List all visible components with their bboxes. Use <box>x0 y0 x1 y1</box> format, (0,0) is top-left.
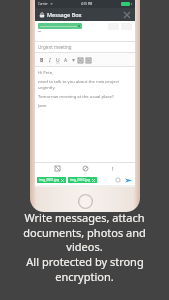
button[interactable]: img_0002.jpg <box>68 177 97 183</box>
staticText: Hi Pete, <box>38 70 54 76</box>
staticText: Jane <box>38 103 47 109</box>
staticText: img_0002.jpg <box>70 178 91 182</box>
staticText: B <box>40 57 44 64</box>
staticText: Carrier <box>38 2 48 6</box>
staticText: I <box>49 57 51 64</box>
staticText: 4:15 PM <box>81 2 93 6</box>
staticText: Urgent meeting <box>38 44 72 50</box>
staticText: Write messages, attach <box>24 210 145 225</box>
button[interactable]: Block <box>81 164 90 173</box>
staticText: Tomorrow morning at the usual place? <box>38 94 114 100</box>
button[interactable]: U <box>54 56 62 64</box>
button[interactable]: Attach <box>114 176 122 184</box>
button[interactable]: Close <box>122 10 131 19</box>
button[interactable]: img_0001.jpg <box>37 177 66 183</box>
button[interactable]: List <box>76 56 84 64</box>
staticText: need to talk to you about the new projec… <box>38 79 132 91</box>
button[interactable]: Urgent meeting <box>35 42 135 52</box>
button[interactable]: Priority <box>108 164 117 173</box>
button[interactable]: Option <box>35 21 135 41</box>
staticText: U <box>56 57 60 64</box>
button[interactable]: Send <box>123 175 133 185</box>
button[interactable]: List <box>84 56 92 64</box>
other: Secure message <box>39 12 45 18</box>
staticText: All protected by strong <box>26 254 144 269</box>
staticText: Message Box <box>47 11 82 18</box>
button[interactable]: Timer <box>53 164 62 173</box>
staticText: ! <box>112 165 114 173</box>
staticText: img_0001.jpg <box>39 178 60 182</box>
button[interactable]: B <box>38 56 46 64</box>
button[interactable]: A <box>62 56 70 64</box>
button[interactable]: I <box>46 56 54 64</box>
button[interactable]: Secure message <box>35 8 135 21</box>
staticText: A <box>64 57 68 64</box>
button[interactable]: More format <box>70 57 76 63</box>
staticText: documents, photos and videos. <box>6 225 163 254</box>
staticText: encryption. <box>55 269 114 284</box>
button[interactable]: Hi Pete, <box>38 70 132 162</box>
